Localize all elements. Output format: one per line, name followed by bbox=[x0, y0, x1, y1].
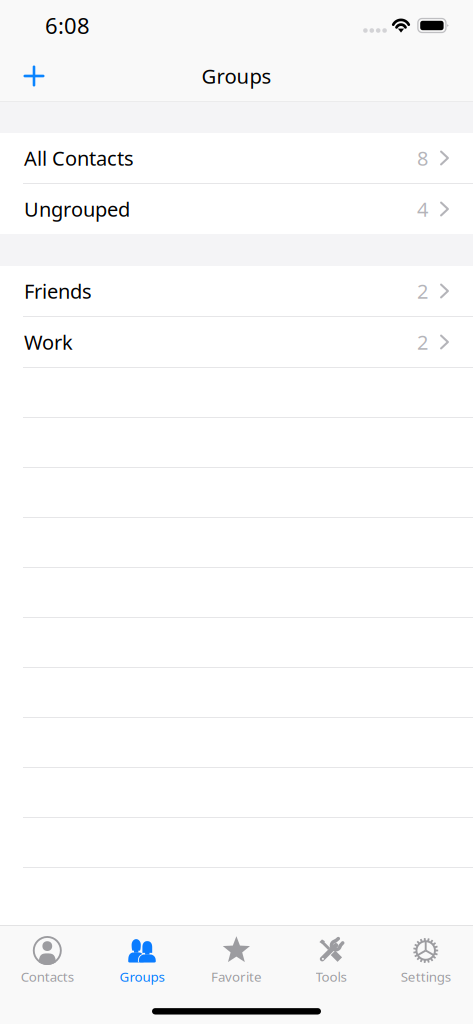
button[interactable]: Tools bbox=[284, 926, 378, 986]
staticText: 2 bbox=[417, 277, 428, 305]
staticText: Work bbox=[24, 328, 73, 356]
button[interactable]: Contacts bbox=[0, 926, 95, 986]
staticText: Tools bbox=[316, 967, 347, 986]
staticText: Ungrouped bbox=[24, 195, 130, 223]
staticText: All Contacts bbox=[24, 144, 134, 172]
button[interactable]: All Contacts bbox=[0, 133, 473, 183]
button[interactable]: Work bbox=[0, 317, 473, 367]
staticText: Groups bbox=[201, 62, 271, 90]
button[interactable]: Groups bbox=[95, 926, 189, 986]
button[interactable]: Ungrouped bbox=[0, 184, 473, 234]
staticText: 6:08 bbox=[45, 10, 90, 40]
button[interactable]: Add Group bbox=[12, 54, 56, 98]
button[interactable]: Favorite bbox=[189, 926, 284, 986]
staticText: Settings bbox=[401, 967, 451, 986]
staticText: Groups bbox=[119, 967, 164, 986]
staticText: 8 bbox=[417, 144, 428, 172]
staticText: 4 bbox=[417, 195, 428, 223]
staticText: Friends bbox=[24, 277, 92, 305]
button[interactable]: Settings bbox=[378, 926, 473, 986]
staticText: Contacts bbox=[21, 967, 74, 986]
staticText: 2 bbox=[417, 328, 428, 356]
staticText: Favorite bbox=[211, 967, 262, 986]
button[interactable]: Friends bbox=[0, 266, 473, 316]
